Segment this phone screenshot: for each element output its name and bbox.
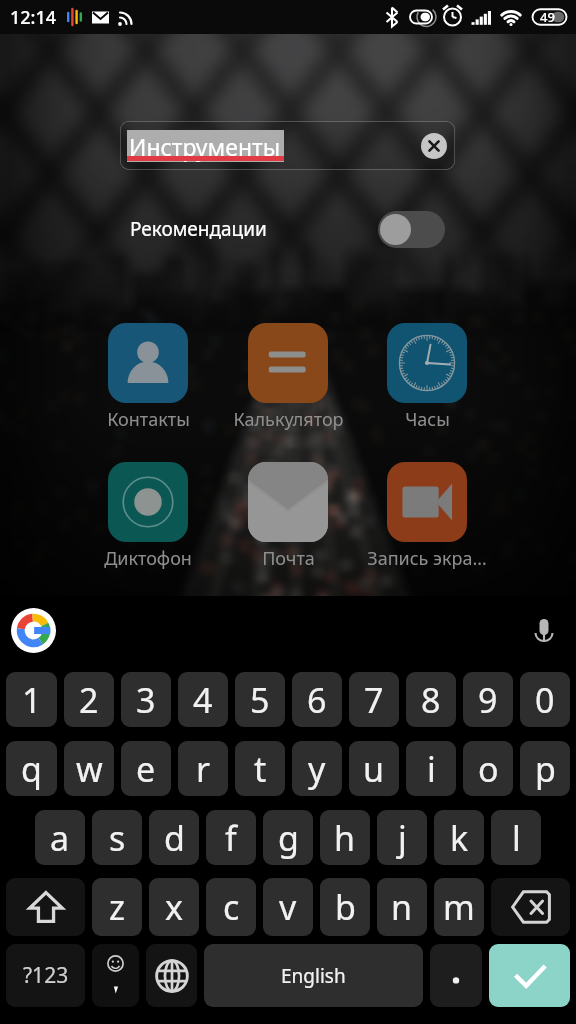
button[interactable]: a xyxy=(35,810,85,865)
staticText: g xyxy=(278,815,299,861)
button[interactable]: 6 xyxy=(292,672,342,727)
button[interactable]: Инструменты xyxy=(120,121,455,170)
button[interactable]: ?123 xyxy=(6,944,85,1007)
staticText: x xyxy=(165,884,183,930)
button[interactable]: Часы xyxy=(357,323,497,432)
staticText: i xyxy=(427,746,436,792)
staticText: s xyxy=(109,815,126,861)
button[interactable]: 0 xyxy=(520,672,570,727)
button[interactable]: i xyxy=(406,741,456,796)
staticText: 6 xyxy=(307,677,327,723)
button[interactable]: 5 xyxy=(235,672,285,727)
staticText: 1 xyxy=(22,677,42,723)
staticText: l xyxy=(512,815,521,861)
staticText: a xyxy=(50,815,70,861)
staticText: 4 xyxy=(193,677,213,723)
button[interactable]: g xyxy=(263,810,313,865)
staticText: v xyxy=(279,884,297,930)
staticText: 12:14 xyxy=(10,5,57,30)
button[interactable]: j xyxy=(377,810,427,865)
button[interactable]: t xyxy=(235,741,285,796)
button[interactable]: c xyxy=(206,878,256,936)
staticText: 8 xyxy=(421,677,441,723)
staticText: q xyxy=(21,746,42,792)
button[interactable]: Voice input xyxy=(526,613,562,649)
staticText: o xyxy=(478,746,499,792)
staticText: Запись экра… xyxy=(367,546,487,571)
staticText: Часы xyxy=(405,407,450,432)
staticText: j xyxy=(398,815,407,861)
button[interactable]: Backspace xyxy=(491,878,570,936)
staticText: h xyxy=(334,815,356,861)
staticText: Почта xyxy=(262,546,315,571)
button[interactable]: x xyxy=(149,878,199,936)
staticText: 7 xyxy=(364,677,384,723)
button[interactable]: 3 xyxy=(121,672,171,727)
button[interactable]: m xyxy=(434,878,484,936)
button[interactable]: English xyxy=(204,944,423,1007)
button[interactable]: r xyxy=(178,741,228,796)
button[interactable]: h xyxy=(320,810,370,865)
staticText: 9 xyxy=(478,677,498,723)
staticText: Контакты xyxy=(107,407,190,432)
button[interactable]: Диктофон xyxy=(78,462,218,571)
button[interactable]: Google search xyxy=(11,608,56,653)
staticText: u xyxy=(363,746,385,792)
button[interactable]: Done xyxy=(489,944,570,1007)
button[interactable]: Почта xyxy=(218,462,358,571)
staticText: w xyxy=(76,746,103,792)
button[interactable]: Change language xyxy=(146,944,197,1007)
button[interactable]: Калькулятор xyxy=(218,323,358,432)
button[interactable]: Emoji xyxy=(92,944,139,1007)
button[interactable]: l xyxy=(491,810,541,865)
button[interactable]: 8 xyxy=(406,672,456,727)
staticText: z xyxy=(109,884,125,930)
staticText: 0 xyxy=(535,677,555,723)
staticText: Диктофон xyxy=(104,546,192,571)
button[interactable] xyxy=(430,944,482,1007)
button[interactable]: Shift xyxy=(6,878,85,936)
staticText: d xyxy=(164,815,185,861)
button[interactable]: Clear text xyxy=(421,133,447,159)
button[interactable]: k xyxy=(434,810,484,865)
button[interactable]: n xyxy=(377,878,427,936)
button[interactable]: q xyxy=(6,741,57,796)
button[interactable]: b xyxy=(320,878,370,936)
staticText: t xyxy=(254,746,267,792)
button[interactable]: 4 xyxy=(178,672,228,727)
staticText: k xyxy=(450,815,469,861)
staticText: n xyxy=(391,884,413,930)
staticText: r xyxy=(196,746,211,792)
staticText: p xyxy=(535,746,556,792)
button[interactable]: p xyxy=(520,741,570,796)
button[interactable]: f xyxy=(206,810,256,865)
staticText: e xyxy=(136,746,156,792)
staticText: c xyxy=(223,884,240,930)
button[interactable]: s xyxy=(92,810,142,865)
button[interactable]: e xyxy=(121,741,171,796)
button[interactable]: Запись экра… xyxy=(357,462,497,571)
staticText: 49 xyxy=(540,8,555,26)
button[interactable]: 7 xyxy=(349,672,399,727)
staticText: ?123 xyxy=(23,961,69,990)
staticText: b xyxy=(335,884,356,930)
staticText: y xyxy=(308,746,326,792)
button[interactable]: u xyxy=(349,741,399,796)
button[interactable]: 9 xyxy=(463,672,513,727)
button[interactable]: 1 xyxy=(6,672,57,727)
button[interactable]: v xyxy=(263,878,313,936)
button[interactable]: Контакты xyxy=(78,323,218,432)
button[interactable]: y xyxy=(292,741,342,796)
button[interactable]: w xyxy=(64,741,114,796)
button[interactable]: d xyxy=(149,810,199,865)
staticText: m xyxy=(443,884,475,930)
button[interactable]: z xyxy=(92,878,142,936)
staticText: English xyxy=(281,963,346,989)
staticText: 5 xyxy=(250,677,270,723)
button[interactable]: o xyxy=(463,741,513,796)
button[interactable]: 2 xyxy=(64,672,114,727)
button[interactable]: Рекомендации xyxy=(130,205,445,253)
staticText: 3 xyxy=(136,677,156,723)
staticText: f xyxy=(225,815,237,861)
staticText: Рекомендации xyxy=(130,216,267,242)
